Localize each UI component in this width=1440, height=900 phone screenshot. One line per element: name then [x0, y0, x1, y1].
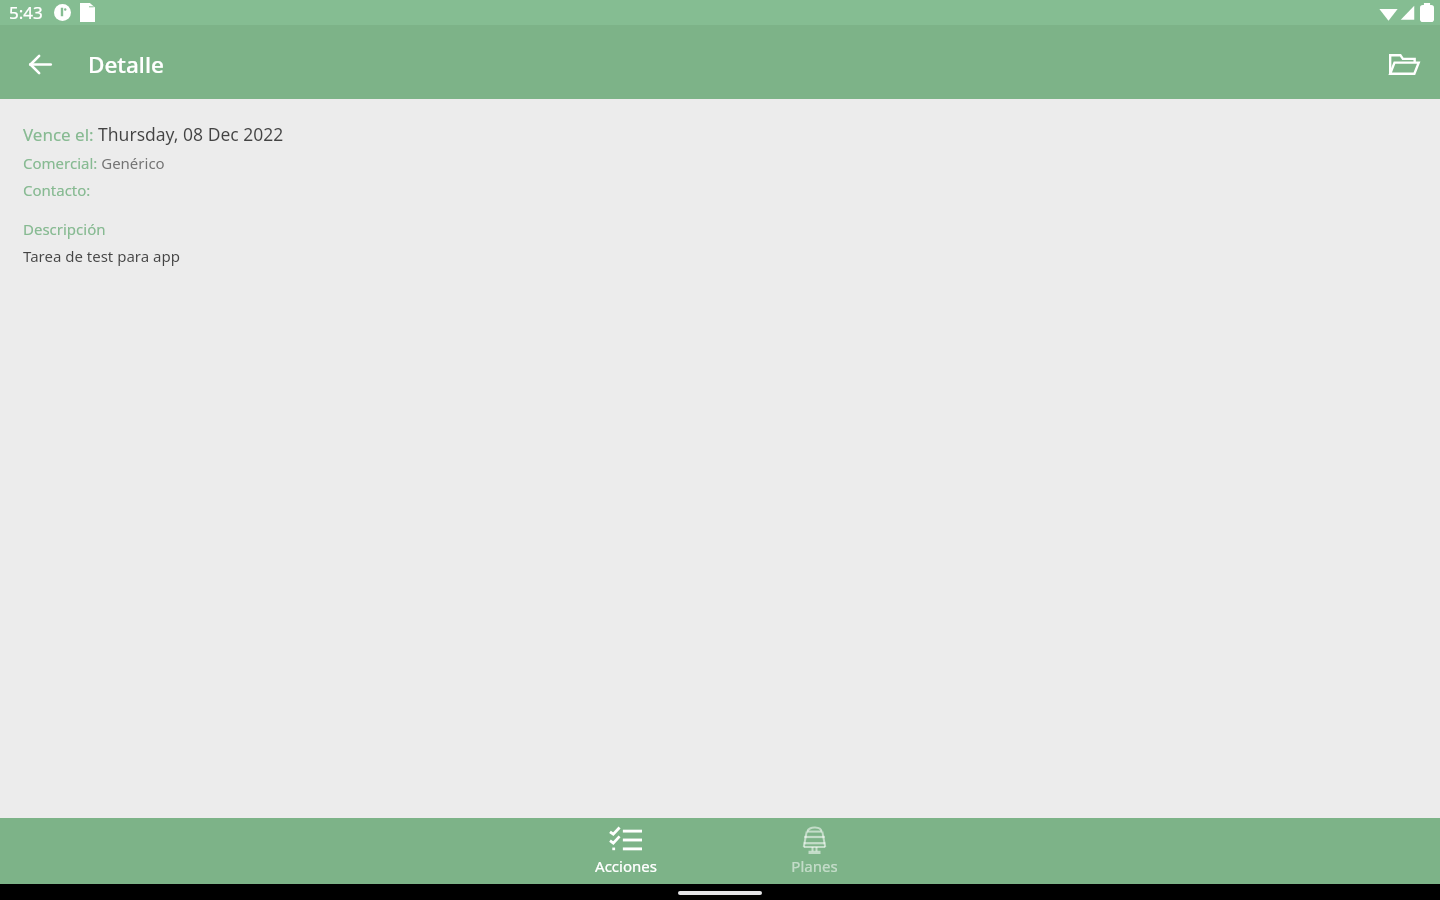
- staticText: Vence el: Thursday, 08 Dec 2022: [23, 122, 284, 146]
- staticText: Planes: [791, 856, 838, 876]
- button[interactable]: Back: [16, 40, 64, 88]
- button[interactable]: Planes: [720, 818, 909, 884]
- staticText: Tarea de test para app: [23, 246, 180, 266]
- button[interactable]: Open folder: [1379, 40, 1427, 88]
- staticText: Detalle: [88, 49, 164, 80]
- staticText: Contacto:: [23, 180, 91, 200]
- button[interactable]: Acciones: [531, 818, 720, 884]
- staticText: 5:43: [9, 1, 43, 24]
- staticText: Comercial: Genérico: [23, 153, 165, 173]
- staticText: Descripción: [23, 219, 106, 239]
- staticText: Acciones: [595, 856, 657, 876]
